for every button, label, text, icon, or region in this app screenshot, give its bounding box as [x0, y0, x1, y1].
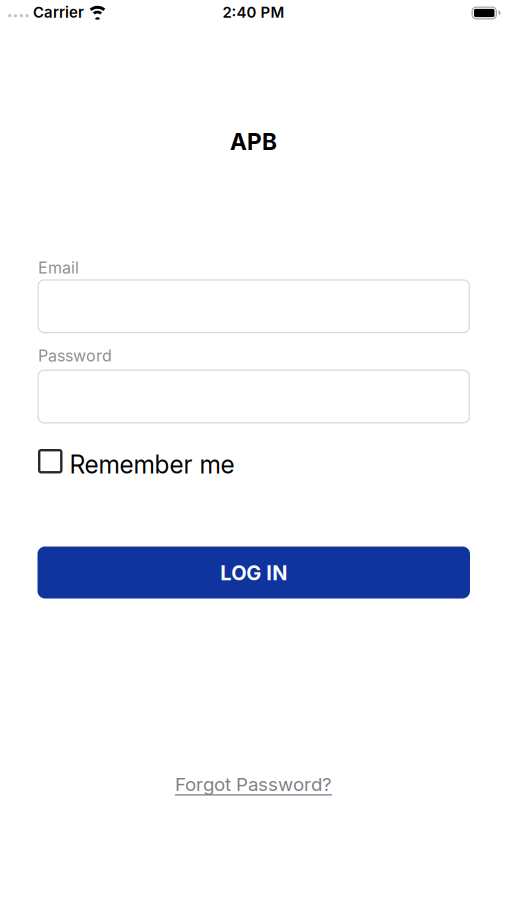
staticText: Forgot Password?	[175, 773, 332, 796]
staticText: Remember me	[69, 450, 234, 479]
staticText: Email	[38, 258, 79, 277]
staticText: 2:40 PM	[222, 3, 284, 21]
staticText: Password	[38, 346, 112, 365]
button[interactable]: Password	[37, 369, 470, 423]
button[interactable]: Email	[37, 279, 470, 333]
button[interactable]: Remember me	[38, 446, 234, 476]
button[interactable]: LOG IN	[37, 546, 470, 598]
staticText: Carrier	[33, 3, 84, 21]
staticText: LOG IN	[220, 561, 287, 585]
button[interactable]: Forgot Password?	[175, 773, 332, 796]
staticText: APB	[230, 128, 277, 155]
